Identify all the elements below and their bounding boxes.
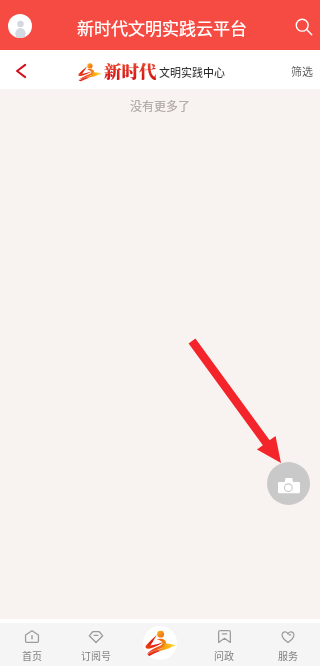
staticText: 新时代	[104, 58, 157, 83]
button[interactable]: Camera	[267, 462, 310, 505]
staticText: 问政	[214, 648, 234, 662]
staticText: 没有更多了	[130, 97, 191, 114]
button[interactable]: Search	[290, 13, 318, 41]
button[interactable]: Back	[6, 56, 35, 85]
button[interactable]: 订阅号	[64, 623, 128, 666]
button[interactable]: 新时代	[78, 59, 225, 84]
staticText: 服务	[278, 648, 298, 662]
button[interactable]: Profile	[8, 14, 32, 38]
button[interactable]: 首页	[0, 623, 64, 666]
staticText: 首页	[22, 648, 42, 662]
staticText: 文明实践中心	[159, 64, 225, 80]
staticText: 新时代文明实践云平台	[77, 15, 247, 40]
staticText: 筛选	[291, 63, 313, 79]
button[interactable]: New Era	[143, 626, 177, 660]
button[interactable]: 筛选	[291, 63, 313, 79]
button[interactable]: 服务	[256, 623, 320, 666]
staticText: 订阅号	[81, 648, 111, 662]
button[interactable]: 问政	[192, 623, 256, 666]
